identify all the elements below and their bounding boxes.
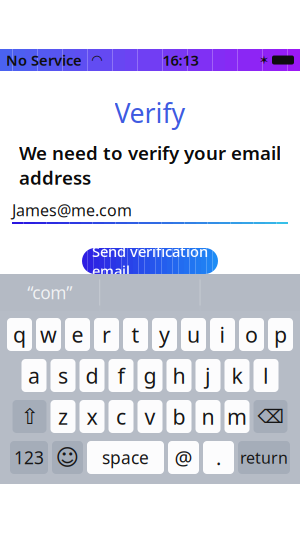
button[interactable]: r (94, 318, 119, 351)
button[interactable]: space (87, 441, 164, 474)
button[interactable]: Shift (12, 400, 46, 433)
button[interactable]: . (203, 441, 234, 474)
button[interactable]: “com” (0, 274, 99, 311)
staticText: ✶ (259, 53, 269, 67)
staticText: p (274, 320, 287, 349)
staticText: s (58, 361, 68, 390)
staticText: y (159, 320, 170, 349)
staticText: z (58, 402, 68, 431)
button[interactable]: d (79, 359, 104, 392)
staticText: w (40, 320, 57, 349)
staticText: ⌫ (257, 406, 283, 427)
button[interactable]: return (238, 441, 290, 474)
staticText: r (102, 320, 111, 349)
staticText: Send verification email (92, 241, 208, 280)
button[interactable]: p (268, 318, 293, 351)
button[interactable]: f (108, 359, 133, 392)
staticText: g (143, 361, 156, 390)
staticText: k (231, 361, 242, 390)
staticText: h (172, 361, 185, 390)
staticText: e (71, 320, 83, 349)
staticText: ◠ (82, 52, 102, 67)
staticText: ☺ (55, 445, 79, 470)
button[interactable]: Delete (253, 400, 287, 433)
button[interactable]: j (195, 359, 220, 392)
staticText: j (205, 361, 211, 390)
button[interactable]: b (166, 400, 191, 433)
staticText: i (219, 320, 225, 349)
staticText: @ (174, 444, 192, 471)
staticText: t (131, 320, 139, 349)
button[interactable]: m (224, 400, 249, 433)
staticText: x (86, 402, 97, 431)
button[interactable]: n (195, 400, 220, 433)
button[interactable]: e (65, 318, 90, 351)
staticText: No Service (6, 50, 82, 70)
staticText: v (144, 402, 155, 431)
button[interactable]: c (108, 400, 133, 433)
staticText: 16:13 (162, 50, 198, 70)
staticText: James@me.com (12, 199, 132, 221)
staticText: d (85, 361, 98, 390)
button[interactable]: Emoji (52, 441, 83, 474)
staticText: l (263, 361, 269, 390)
staticText: b (172, 402, 185, 431)
button[interactable]: Send verification email (82, 248, 218, 274)
staticText: We need to verify your email address (19, 140, 281, 190)
staticText: u (187, 320, 200, 349)
button[interactable]: v (137, 400, 162, 433)
button[interactable]: s (50, 359, 75, 392)
button[interactable]: i (210, 318, 235, 351)
button[interactable]: g (137, 359, 162, 392)
button[interactable]: k (224, 359, 249, 392)
staticText: “com” (27, 281, 72, 304)
staticText: c (116, 402, 126, 431)
button[interactable]: 123 (10, 441, 48, 474)
button[interactable]: t (123, 318, 148, 351)
button[interactable]: x (79, 400, 104, 433)
button[interactable]: u (181, 318, 206, 351)
button[interactable]: h (166, 359, 191, 392)
button[interactable]: z (50, 400, 75, 433)
staticText: o (245, 320, 258, 349)
button[interactable]: l (253, 359, 278, 392)
button[interactable]: y (152, 318, 177, 351)
staticText: return (240, 447, 288, 468)
staticText: space (102, 446, 149, 469)
staticText: Verify (114, 95, 185, 130)
staticText: a (28, 361, 40, 390)
button[interactable]: o (239, 318, 264, 351)
button[interactable]: @ (168, 441, 199, 474)
button[interactable]: a (21, 359, 46, 392)
staticText: ⇧ (20, 404, 38, 429)
staticText: n (201, 402, 214, 431)
staticText: f (117, 361, 124, 390)
staticText: m (227, 402, 247, 431)
button[interactable]: q (7, 318, 32, 351)
button[interactable]: w (36, 318, 61, 351)
staticText: q (13, 320, 26, 349)
staticText: 123 (14, 446, 44, 469)
staticText: . (216, 444, 221, 471)
